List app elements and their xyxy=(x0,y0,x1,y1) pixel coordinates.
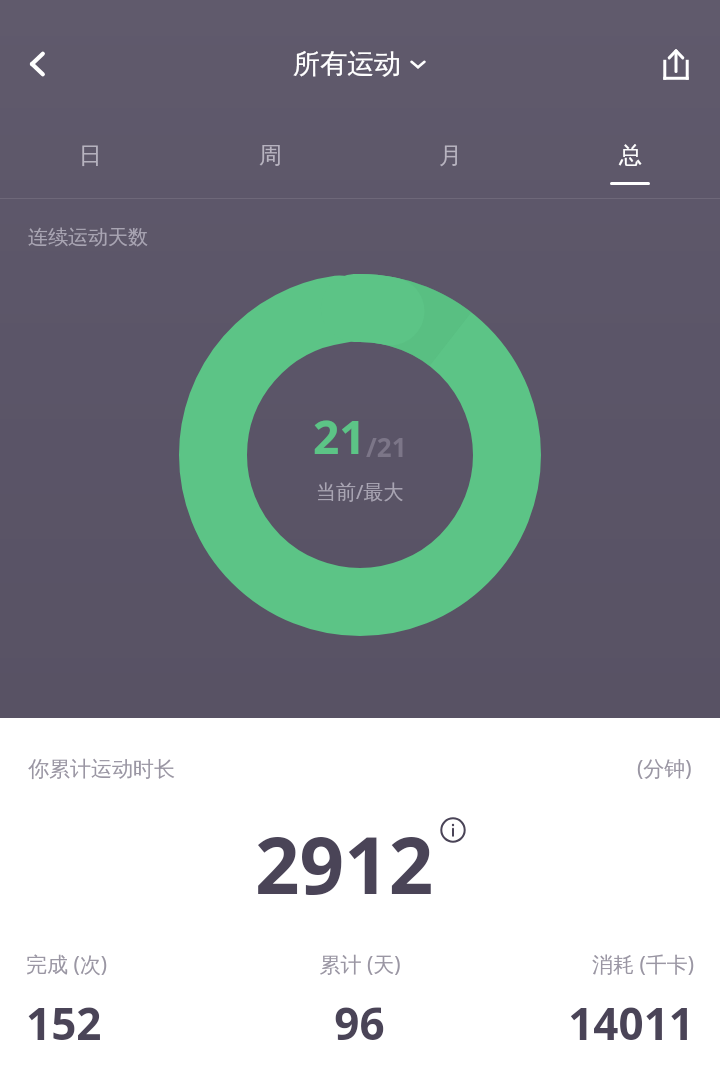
button[interactable]: Back xyxy=(6,32,70,96)
staticText: (分钟) xyxy=(637,754,692,783)
staticText: 21 xyxy=(313,405,366,468)
button[interactable]: Info xyxy=(440,817,466,843)
staticText: 96 xyxy=(334,993,385,1053)
staticText: 你累计运动时长 xyxy=(28,756,175,782)
staticText: 日 xyxy=(79,141,102,170)
staticText: 当前/最大 xyxy=(316,478,404,505)
button[interactable]: 消耗 (千卡) xyxy=(471,950,694,1053)
button[interactable]: Share xyxy=(644,32,708,96)
button[interactable]: 累计 (天) xyxy=(248,950,471,1053)
button[interactable]: 月 xyxy=(360,128,540,198)
button[interactable]: 完成 (次) xyxy=(26,950,248,1053)
button[interactable]: 日 xyxy=(0,128,180,198)
staticText: 月 xyxy=(439,141,462,170)
staticText: 累计 (天) xyxy=(319,950,401,979)
button[interactable]: 所有运动 xyxy=(293,47,427,81)
staticText: 所有运动 xyxy=(293,47,401,81)
staticText: 14011 xyxy=(568,993,694,1053)
staticText: 周 xyxy=(259,141,282,170)
staticText: 152 xyxy=(26,993,102,1053)
staticText: 消耗 (千卡) xyxy=(591,950,694,979)
staticText: 总 xyxy=(619,141,642,170)
staticText: /21 xyxy=(366,429,407,464)
button[interactable]: 周 xyxy=(180,128,360,198)
staticText: 2912 xyxy=(255,811,434,917)
staticText: 完成 (次) xyxy=(26,950,108,979)
button[interactable]: 总 xyxy=(540,128,720,198)
staticText: 连续运动天数 xyxy=(28,225,148,250)
